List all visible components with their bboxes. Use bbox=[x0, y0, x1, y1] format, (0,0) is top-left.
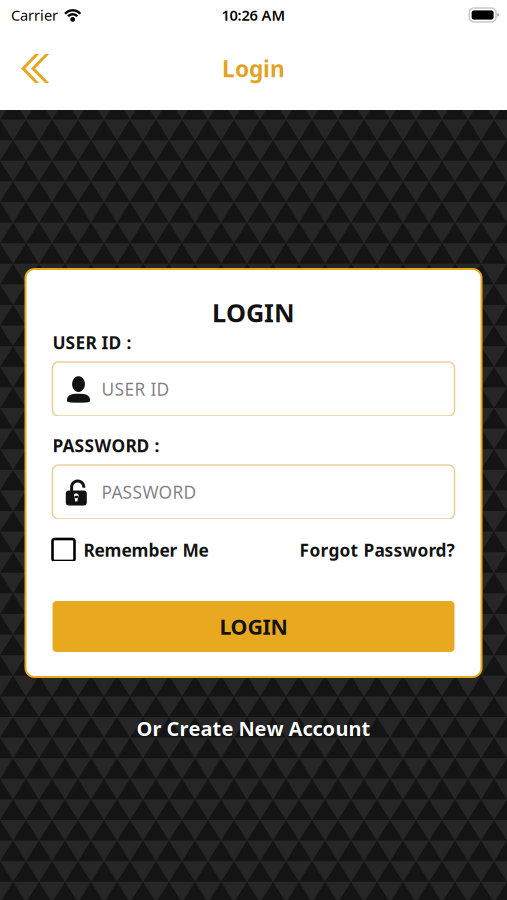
staticText: PASSWORD bbox=[101, 480, 196, 503]
staticText: LOGIN bbox=[212, 296, 295, 329]
staticText: USER ID : bbox=[52, 331, 131, 354]
staticText: Carrier bbox=[11, 5, 58, 25]
button[interactable]: LOGIN bbox=[52, 601, 454, 652]
staticText: LOGIN bbox=[219, 612, 287, 641]
staticText: Forgot Password? bbox=[299, 538, 454, 561]
staticText: PASSWORD : bbox=[52, 434, 159, 457]
staticText: Or Create New Account bbox=[136, 715, 370, 742]
staticText: USER ID bbox=[101, 377, 169, 400]
staticText: Login bbox=[222, 53, 285, 84]
staticText: Remember Me bbox=[83, 538, 208, 561]
button[interactable]: Or Create New Account bbox=[122, 708, 384, 749]
staticText: 10:26 AM bbox=[221, 5, 285, 25]
button[interactable]: Remember Me bbox=[52, 538, 208, 561]
button[interactable]: Forgot Password? bbox=[299, 538, 454, 561]
button[interactable]: Back bbox=[0, 40, 67, 99]
